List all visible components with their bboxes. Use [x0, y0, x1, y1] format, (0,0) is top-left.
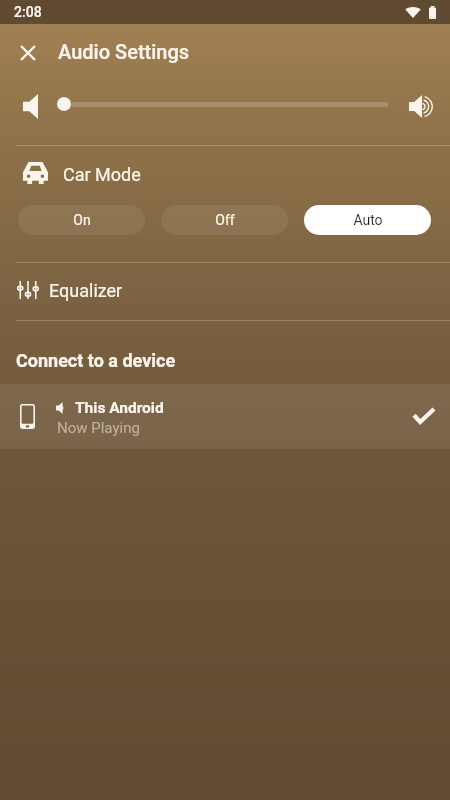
staticText: On: [73, 212, 91, 228]
other: Selected: [414, 409, 434, 422]
button[interactable]: Mute: [8, 84, 52, 128]
staticText: Now Playing: [57, 419, 140, 437]
staticText: Audio Settings: [58, 40, 190, 63]
button[interactable]: This Android: [0, 384, 450, 449]
staticText: Car Mode: [63, 164, 141, 185]
button[interactable]: Off: [161, 205, 288, 235]
button[interactable]: On: [18, 205, 145, 235]
staticText: Connect to a device: [16, 350, 176, 371]
staticText: Auto: [353, 212, 383, 228]
button[interactable]: Equalizer: [0, 263, 450, 320]
button[interactable]: Close: [5, 30, 51, 76]
staticText: Off: [215, 212, 235, 228]
button[interactable]: Volume up: [399, 84, 443, 128]
staticText: This Android: [75, 399, 164, 417]
staticText: Equalizer: [49, 280, 123, 301]
staticText: 2:08: [14, 4, 42, 20]
button[interactable]: Auto: [304, 205, 431, 235]
